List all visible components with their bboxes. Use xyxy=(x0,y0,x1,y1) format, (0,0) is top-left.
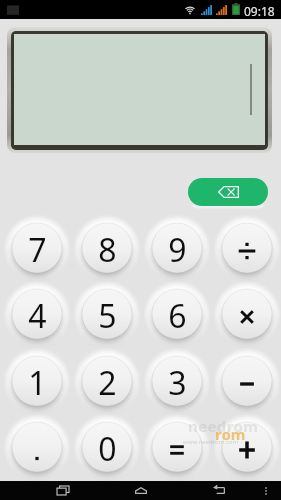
button[interactable]: Home xyxy=(122,481,160,500)
button[interactable]: 6 xyxy=(142,279,212,349)
button[interactable]: 3 xyxy=(142,346,212,416)
button[interactable]: 5 xyxy=(72,279,142,349)
staticText: 3 xyxy=(168,361,187,405)
button[interactable]: Divide xyxy=(212,213,281,283)
staticText: 8 xyxy=(98,228,117,272)
button[interactable]: 9 xyxy=(142,213,212,283)
staticText: rom xyxy=(215,424,246,444)
staticText: 2 xyxy=(98,361,117,405)
staticText: needrom xyxy=(188,416,259,436)
button[interactable]: Backspace xyxy=(188,178,268,206)
button[interactable]: 7 xyxy=(2,213,72,283)
staticText: 0 xyxy=(98,427,117,471)
staticText: 9 xyxy=(168,228,187,272)
button[interactable]: More options xyxy=(255,481,277,500)
staticText: 7 xyxy=(28,228,47,272)
button[interactable]: Equals xyxy=(142,412,212,482)
staticText: 6 xyxy=(168,294,187,338)
staticText: 4 xyxy=(28,294,47,338)
staticText: 1 xyxy=(28,361,47,405)
button[interactable]: 8 xyxy=(72,213,142,283)
button[interactable]: 4 xyxy=(2,279,72,349)
staticText: 5 xyxy=(98,294,117,338)
button[interactable]: Multiply xyxy=(212,279,281,349)
staticText: 09:18 xyxy=(244,3,275,19)
button[interactable]: 1 xyxy=(2,346,72,416)
staticText: www.needrom.com xyxy=(183,438,239,446)
button[interactable]: Back xyxy=(200,481,238,500)
button[interactable]: Decimal point xyxy=(2,412,72,482)
button[interactable]: Recents xyxy=(44,481,82,500)
button[interactable]: Minus xyxy=(212,346,281,416)
button[interactable]: 2 xyxy=(72,346,142,416)
button[interactable]: Plus xyxy=(212,412,281,482)
button[interactable]: 0 xyxy=(72,412,142,482)
